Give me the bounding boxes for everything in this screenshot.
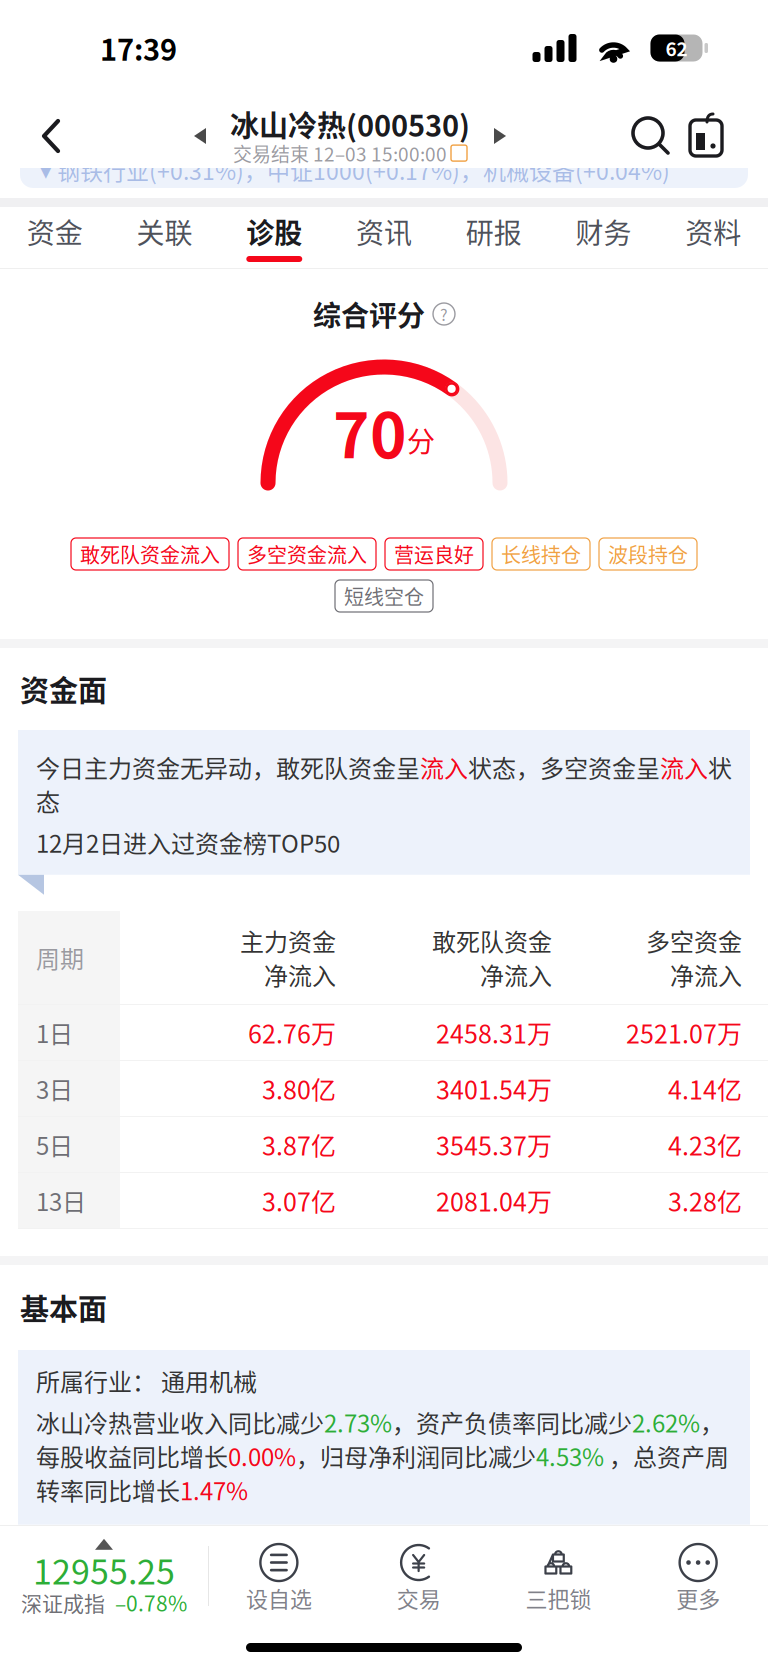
staticText: 4.14亿 (668, 1075, 742, 1102)
staticText: 交易 (397, 1586, 441, 1609)
staticText: 2521.07万 (626, 1019, 742, 1046)
staticText: 净流入 (264, 962, 336, 987)
button[interactable]: 营运良好 (385, 538, 483, 570)
staticText: 资金 (27, 217, 83, 246)
staticText: 2081.04万 (436, 1187, 552, 1214)
staticText: 4.23亿 (668, 1131, 742, 1158)
staticText: 主力资金 (240, 928, 336, 953)
button[interactable]: 诊股 (219, 207, 329, 268)
staticText: 波段持仓 (608, 544, 688, 564)
button[interactable]: 敢死队资金流入 (71, 538, 229, 570)
staticText: 62 (665, 38, 687, 58)
button[interactable]: 三把锁 (488, 1542, 628, 1609)
staticText: 3.87亿 (262, 1131, 336, 1158)
staticText: 资料 (685, 217, 741, 246)
staticText: 3545.37万 (436, 1131, 552, 1158)
staticText: 1日 (36, 1020, 73, 1045)
staticText: 12955.25 (33, 1552, 175, 1587)
button[interactable]: 更多 (628, 1542, 768, 1609)
staticText: 深证成指 (21, 1591, 105, 1613)
staticText: 交易结束 12–03 15:00:00 (233, 143, 447, 163)
staticText: 13日 (36, 1188, 86, 1213)
staticText: 周期 (36, 945, 84, 970)
staticText: 分 (407, 425, 435, 455)
staticText: 3.07亿 (262, 1187, 336, 1214)
staticText: 3.28亿 (668, 1187, 742, 1214)
staticText: 研报 (466, 217, 522, 246)
button[interactable]: 研报 (439, 207, 549, 268)
button[interactable]: Search (630, 115, 672, 157)
staticText: 关联 (137, 217, 193, 246)
staticText: 70 (333, 399, 407, 464)
staticText: 净流入 (480, 962, 552, 987)
staticText: 5日 (36, 1132, 73, 1157)
staticText: 17:39 (100, 33, 177, 63)
button[interactable]: 波段持仓 (599, 538, 697, 570)
staticText: 基本面 (20, 1292, 107, 1323)
staticText: 12月2日进入过资金榜TOP50 (36, 830, 340, 855)
staticText: 综合评分 (313, 299, 425, 329)
staticText: 诊股 (246, 217, 302, 246)
staticText: 3日 (36, 1076, 73, 1101)
button[interactable]: 短线空仓 (335, 580, 433, 612)
button[interactable]: 财务 (549, 207, 658, 268)
staticText: 敢死队资金 (432, 928, 552, 953)
button[interactable]: Layout (686, 113, 726, 159)
staticText: 多空资金 (646, 928, 742, 953)
staticText: 多空资金流入 (247, 544, 367, 564)
staticText: ▾ 钢铁行业(+0.31%)，中证1000(+0.17%)，机械设备(+0.04… (40, 158, 670, 182)
staticText: 冰山冷热营业收入同比减少2.73%，资产负债率同比减少2.62%，每股收益同比增… (36, 1405, 729, 1507)
staticText: 2458.31万 (436, 1019, 552, 1046)
staticText: 3.80亿 (262, 1075, 336, 1102)
button[interactable]: 资金 (0, 207, 110, 268)
button[interactable]: 资讯 (329, 207, 439, 268)
button[interactable]: 资料 (658, 207, 768, 268)
staticText: 敢死队资金流入 (80, 544, 220, 564)
staticText: 三把锁 (525, 1586, 591, 1609)
button[interactable]: 关联 (110, 207, 219, 268)
button[interactable]: 多空资金流入 (238, 538, 376, 570)
staticText: 所属行业： 通用机械 (36, 1368, 257, 1393)
staticText: –0.78% (115, 1591, 187, 1613)
staticText: 净流入 (670, 962, 742, 987)
staticText: ? (440, 306, 448, 322)
staticText: 更多 (676, 1586, 720, 1609)
button[interactable]: 12955.25 (0, 1539, 208, 1613)
staticText: 今日主力资金无异动，敢死队资金呈流入状态，多空资金呈流入状态 (36, 750, 732, 818)
staticText: 长线持仓 (501, 544, 581, 564)
staticText: 设自选 (246, 1586, 312, 1609)
button[interactable]: 交易 (349, 1542, 489, 1609)
staticText: 冰山冷热(000530) (230, 109, 470, 139)
staticText: 3401.54万 (436, 1075, 552, 1102)
staticText: 资金面 (20, 674, 107, 704)
staticText: 62.76万 (248, 1019, 336, 1046)
staticText: 财务 (575, 217, 631, 246)
staticText: 短线空仓 (344, 586, 424, 606)
button[interactable]: 设自选 (209, 1542, 349, 1609)
button[interactable]: Back (36, 113, 70, 159)
staticText: 营运良好 (394, 544, 474, 564)
staticText: 资讯 (356, 217, 412, 246)
button[interactable]: 长线持仓 (492, 538, 590, 570)
